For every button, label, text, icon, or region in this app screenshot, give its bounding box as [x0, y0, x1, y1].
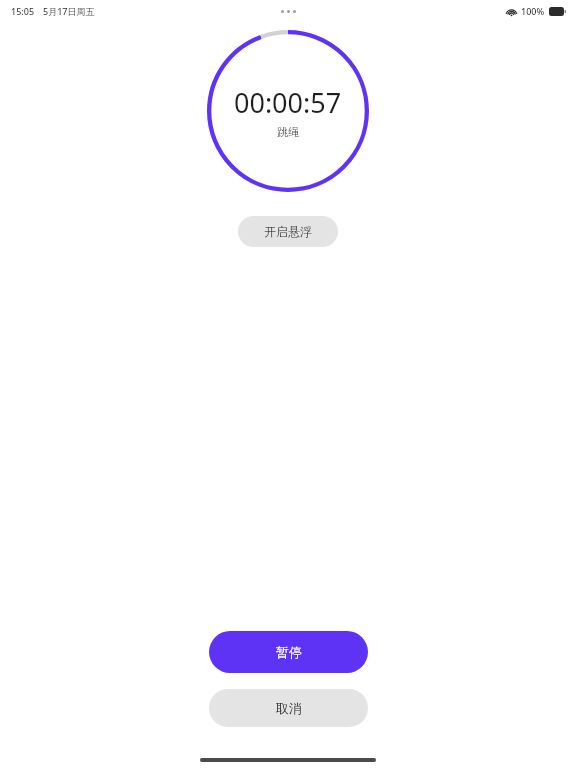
button[interactable]: 暂停 [209, 631, 368, 673]
staticText: 5月17日周五 [43, 5, 95, 17]
button[interactable]: 开启悬浮 [238, 216, 338, 247]
staticText: 100% [521, 5, 545, 17]
staticText: 15:05 [11, 5, 35, 17]
button[interactable]: 取消 [209, 689, 368, 727]
staticText: 取消 [276, 700, 302, 716]
staticText: 跳绳 [277, 125, 299, 139]
staticText: 00:00:57 [234, 84, 342, 121]
staticText: 暂停 [276, 644, 302, 660]
staticText: 开启悬浮 [264, 224, 312, 239]
